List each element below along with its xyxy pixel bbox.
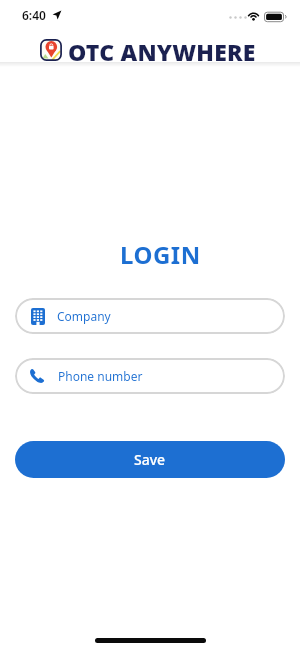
staticText: 6:40 <box>22 7 46 23</box>
staticText: Company <box>57 308 111 324</box>
staticText: OTC ANYWHERE <box>68 36 256 67</box>
button[interactable]: Company <box>15 298 285 334</box>
button[interactable]: Save <box>15 441 285 478</box>
staticText: Save <box>134 450 166 469</box>
staticText: LOGIN <box>120 238 201 271</box>
staticText: Phone number <box>58 368 143 384</box>
button[interactable]: Phone number <box>15 358 285 394</box>
